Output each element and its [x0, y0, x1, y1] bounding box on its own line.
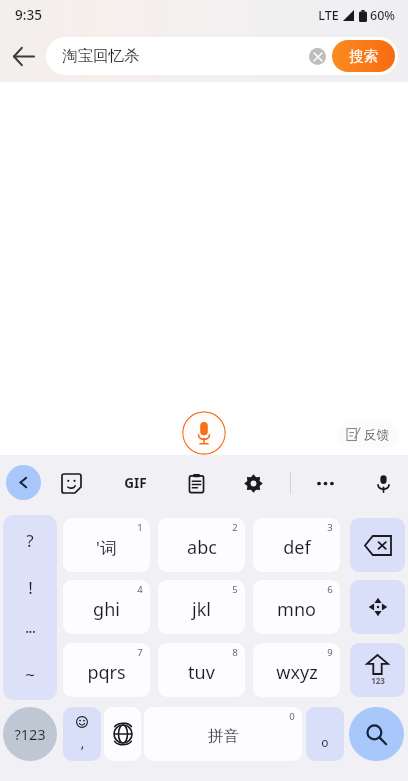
button[interactable]: ?123: [3, 707, 57, 761]
button[interactable]: More options: [306, 464, 344, 502]
button[interactable]: Stickers: [52, 464, 90, 502]
staticText: !: [28, 576, 33, 599]
staticText: 123: [371, 675, 385, 686]
button[interactable]: 4: [63, 580, 150, 634]
button[interactable]: 淘宝回忆杀: [46, 37, 398, 75]
staticText: pqrs: [87, 660, 126, 685]
staticText: 1: [137, 521, 143, 534]
button[interactable]: Shift: [350, 643, 405, 697]
button[interactable]: 搜索: [332, 40, 395, 72]
staticText: ···: [25, 623, 36, 639]
button[interactable]: Switch language: [104, 707, 141, 761]
button[interactable]: Voice typing: [364, 464, 402, 502]
button[interactable]: Backspace: [350, 518, 405, 572]
button[interactable]: 反馈: [337, 421, 399, 448]
staticText: 60%: [370, 7, 395, 24]
staticText: LTE: [318, 7, 339, 24]
button[interactable]: 6: [253, 580, 340, 634]
staticText: 2: [232, 521, 238, 534]
button[interactable]: Collapse: [6, 465, 41, 500]
button[interactable]: GIF: [116, 464, 154, 502]
staticText: 9: [327, 646, 333, 659]
staticText: 7: [137, 646, 143, 659]
button[interactable]: 7: [63, 643, 150, 697]
staticText: 搜索: [349, 47, 378, 65]
button[interactable]: Back: [0, 33, 46, 79]
button[interactable]: 3: [253, 518, 340, 572]
button[interactable]: Clear: [309, 48, 326, 65]
staticText: 3: [327, 521, 333, 534]
staticText: ?: [26, 529, 34, 552]
staticText: 淘宝回忆杀: [62, 46, 140, 66]
staticText: 5: [232, 583, 238, 596]
staticText: 6: [327, 583, 333, 596]
staticText: ?123: [14, 724, 46, 744]
button[interactable]: Clipboard: [177, 464, 215, 502]
staticText: '词: [96, 536, 117, 559]
staticText: abc: [187, 535, 217, 560]
staticText: 8: [232, 646, 238, 659]
staticText: 反馈: [364, 427, 389, 443]
staticText: o: [321, 734, 329, 750]
button[interactable]: Cursor control: [350, 580, 405, 634]
button[interactable]: 2: [158, 518, 245, 572]
button[interactable]: 9: [253, 643, 340, 697]
staticText: 拼音: [208, 726, 239, 746]
button[interactable]: 8: [158, 643, 245, 697]
staticText: 9:35: [15, 6, 42, 24]
staticText: mno: [277, 597, 316, 622]
button[interactable]: Search: [349, 707, 404, 761]
button[interactable]: Settings: [234, 464, 272, 502]
staticText: 0: [289, 710, 295, 723]
staticText: 4: [137, 583, 143, 596]
button[interactable]: Emoji and comma: [63, 707, 101, 761]
staticText: ~: [25, 663, 35, 686]
button[interactable]: Voice input: [182, 411, 226, 455]
button[interactable]: o: [306, 707, 344, 761]
staticText: GIF: [124, 474, 147, 492]
staticText: ,: [80, 732, 85, 752]
staticText: wxyz: [276, 660, 318, 685]
staticText: jkl: [192, 597, 211, 622]
button[interactable]: Symbols: [3, 515, 57, 700]
button[interactable]: 0: [144, 707, 302, 761]
staticText: def: [283, 535, 311, 560]
staticText: ghi: [93, 597, 120, 622]
staticText: tuv: [188, 660, 215, 685]
button[interactable]: 1: [63, 518, 150, 572]
button[interactable]: 5: [158, 580, 245, 634]
